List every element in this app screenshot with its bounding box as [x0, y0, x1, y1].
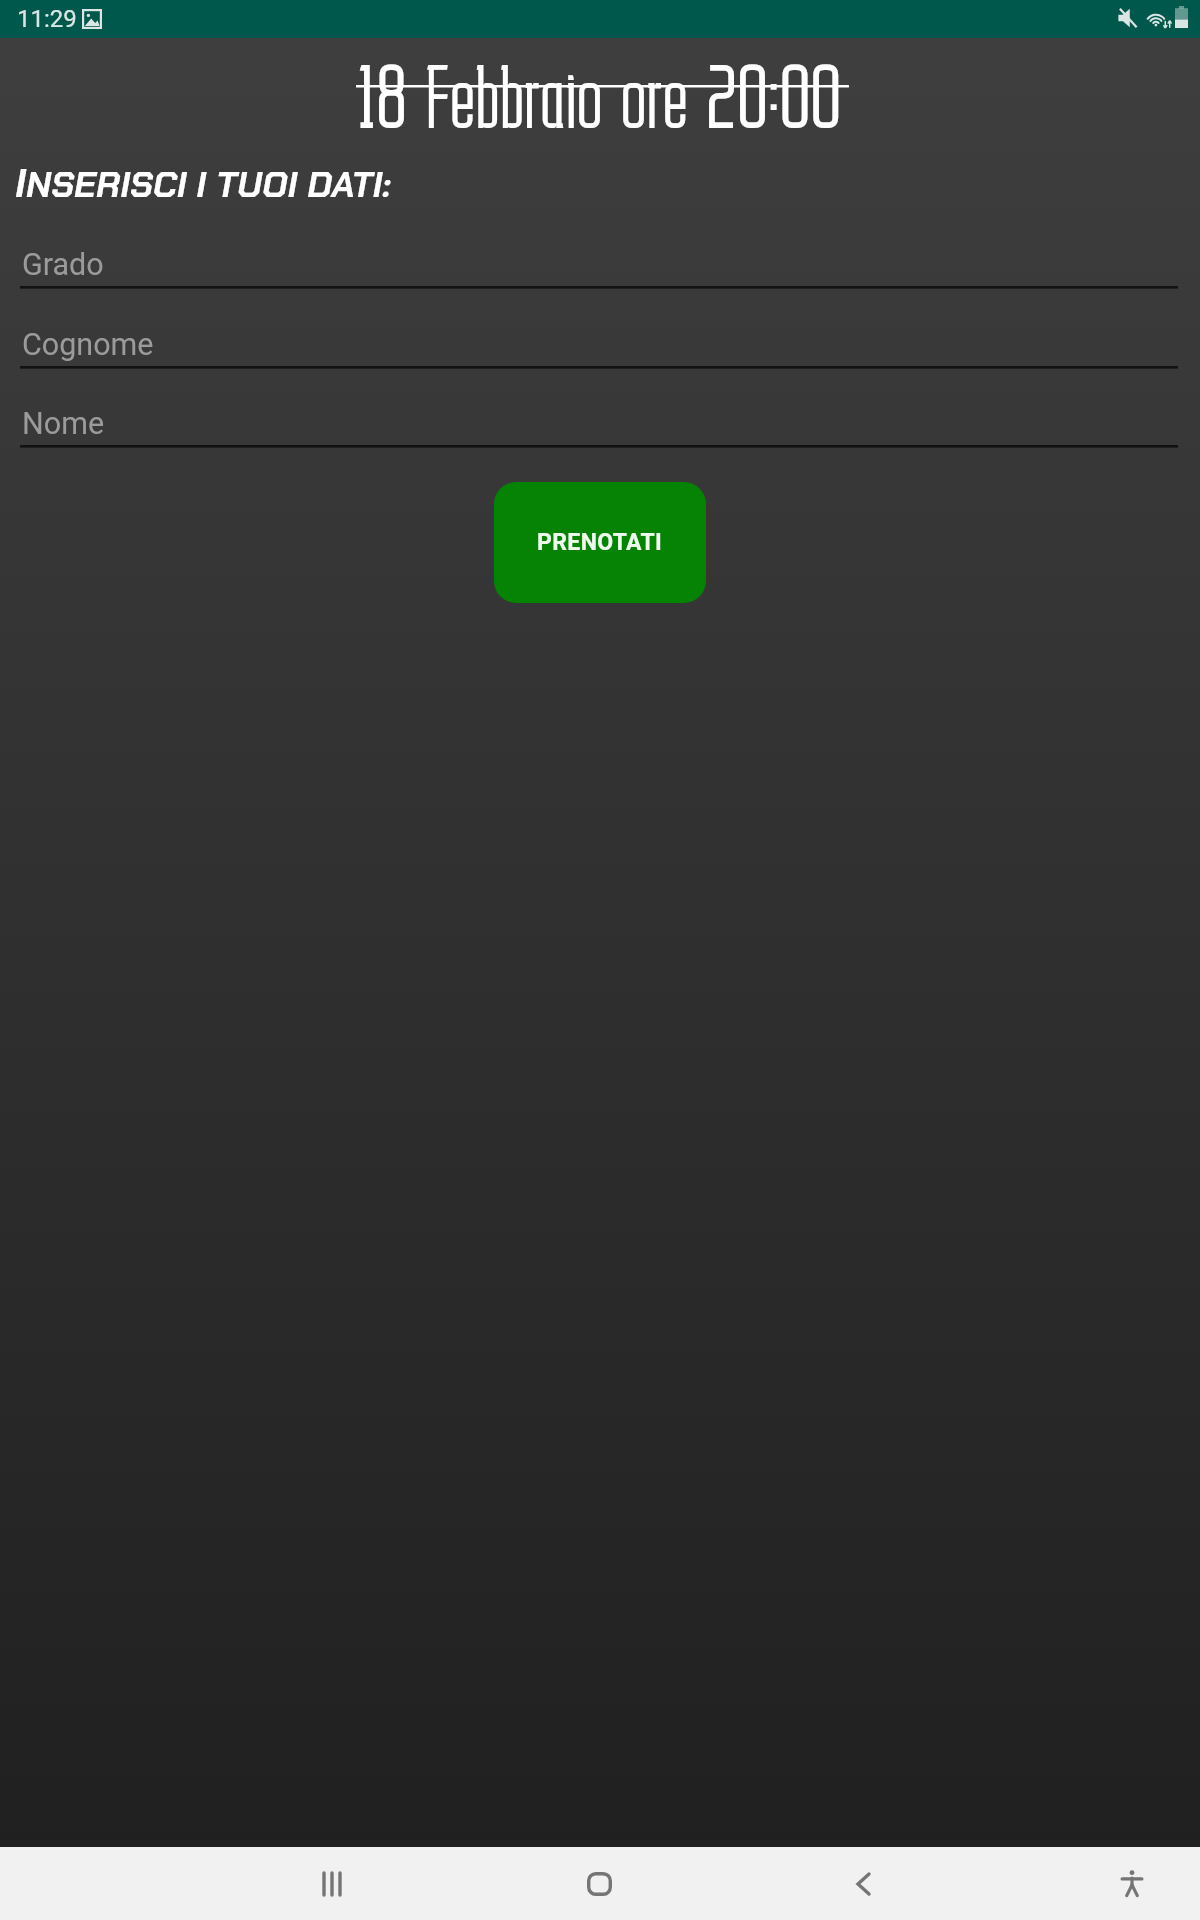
button[interactable]: Accessibility	[1092, 1847, 1172, 1920]
button[interactable]: PRENOTATI	[494, 482, 706, 603]
button[interactable]: Grado	[0, 244, 1200, 289]
button[interactable]: Recents	[294, 1847, 374, 1920]
staticText: Grado	[22, 247, 104, 283]
staticText: INSERISCI I TUOI DATI:	[15, 157, 391, 209]
button[interactable]: Home	[559, 1847, 639, 1920]
button[interactable]: Back	[823, 1847, 903, 1920]
staticText: Cognome	[22, 327, 154, 363]
staticText: PRENOTATI	[537, 529, 663, 556]
button[interactable]: Cognome	[0, 324, 1200, 369]
staticText: Nome	[22, 406, 105, 442]
button[interactable]: Nome	[0, 403, 1200, 448]
staticText: 18 Febbraio ore 20:00	[0, 38, 1200, 144]
staticText: 11:29	[17, 5, 77, 33]
other: Screenshot	[82, 9, 102, 29]
